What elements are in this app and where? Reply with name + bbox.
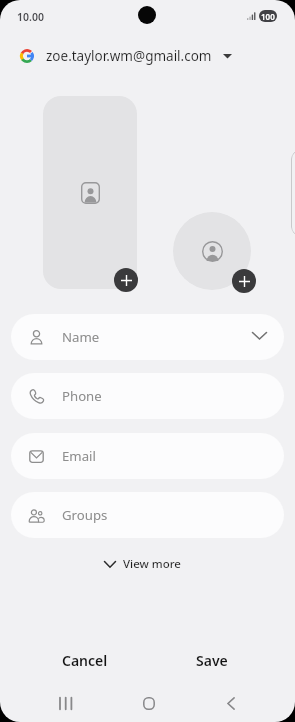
button[interactable]: Phone (11, 373, 284, 419)
staticText: Phone (62, 387, 102, 405)
button[interactable] (52, 689, 80, 717)
button[interactable] (134, 689, 163, 717)
staticText: Save (196, 651, 228, 670)
button[interactable]: Save (167, 640, 257, 680)
button[interactable]: Name (11, 314, 284, 360)
staticText: 100 (261, 11, 275, 22)
button[interactable] (173, 212, 251, 290)
button[interactable]: Email (11, 433, 284, 479)
button[interactable] (217, 689, 245, 717)
staticText: Groups (62, 506, 108, 524)
button[interactable]: View more (98, 552, 181, 576)
staticText: zoe.taylor.wm@gmail.com (46, 47, 212, 65)
staticText: Name (62, 328, 100, 346)
button[interactable] (114, 268, 138, 292)
button[interactable] (43, 96, 137, 289)
staticText: Cancel (62, 651, 108, 670)
button[interactable] (232, 269, 256, 293)
button[interactable]: Groups (11, 492, 284, 538)
staticText: View more (123, 556, 181, 572)
button[interactable]: zoe.taylor.wm@gmail.com (12, 42, 232, 70)
staticText: Email (62, 447, 96, 465)
staticText: 10.00 (17, 10, 44, 24)
button[interactable]: Cancel (40, 640, 130, 680)
